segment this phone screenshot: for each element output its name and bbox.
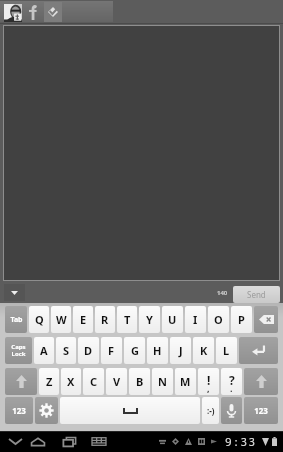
button[interactable]: I (185, 306, 206, 333)
button[interactable]: Q (29, 306, 49, 333)
staticText: X (67, 374, 75, 389)
button[interactable]: U (162, 306, 183, 333)
staticText: E (80, 312, 87, 327)
staticText: W (56, 312, 67, 327)
button[interactable]: Y (139, 306, 160, 333)
button[interactable]: Foursquare (44, 2, 62, 22)
button[interactable]: N (152, 368, 173, 395)
staticText: D (84, 343, 93, 358)
button[interactable]: More options (4, 284, 25, 301)
staticText: Send (247, 289, 266, 300)
button[interactable]: 123 (244, 397, 278, 424)
staticText: P (238, 312, 245, 327)
staticText: Tab (10, 315, 23, 325)
button[interactable]: K (193, 337, 214, 364)
button[interactable]: :-) (202, 397, 219, 424)
button[interactable]: D (78, 337, 99, 364)
button[interactable]: Tab (5, 306, 27, 333)
button[interactable]: Voice input (221, 397, 242, 424)
staticText: 123 (12, 405, 26, 416)
staticText: . (230, 382, 233, 394)
button[interactable]: Backspace (254, 306, 278, 333)
staticText: Y (146, 312, 153, 327)
staticText: B (136, 374, 144, 389)
button[interactable]: R (95, 306, 115, 333)
staticText: T (124, 312, 131, 327)
staticText: ? (229, 372, 235, 388)
button[interactable]: V (106, 368, 127, 395)
button[interactable]: Recent apps (57, 431, 81, 452)
button[interactable]: B (129, 368, 150, 395)
button[interactable]: H (147, 337, 168, 364)
staticText: U (168, 312, 177, 327)
button[interactable]: P (231, 306, 252, 333)
button[interactable]: Caps Lock (5, 337, 32, 364)
staticText: :-) (207, 405, 215, 416)
staticText: 140 (217, 289, 228, 297)
button[interactable]: 123 (5, 397, 33, 424)
button[interactable]: X (61, 368, 81, 395)
button[interactable]: ! (198, 368, 219, 395)
button[interactable]: Space (60, 397, 200, 424)
button[interactable]: S (56, 337, 76, 364)
button[interactable]: Keyboard (87, 431, 111, 452)
staticText: Z (46, 374, 53, 389)
staticText: 123 (254, 405, 268, 416)
staticText: R (101, 312, 109, 327)
button[interactable]: A (34, 337, 54, 364)
staticText: ! (207, 372, 211, 388)
staticText: Caps Lock (11, 343, 26, 358)
button[interactable]: M (175, 368, 196, 395)
staticText: S (63, 343, 70, 358)
button[interactable]: Enter (239, 337, 278, 364)
button[interactable]: F (101, 337, 122, 364)
button[interactable]: Send (233, 286, 280, 303)
staticText: O (214, 312, 223, 327)
button[interactable]: O (208, 306, 229, 333)
staticText: A (40, 343, 48, 358)
button[interactable]: L (216, 337, 237, 364)
button[interactable]: Home (26, 431, 50, 452)
staticText: N (158, 374, 167, 389)
button[interactable]: W (51, 306, 71, 333)
staticText: Q (35, 312, 44, 327)
button[interactable]: E (73, 306, 93, 333)
button[interactable]: Settings (35, 397, 58, 424)
staticText: 9:33 (225, 434, 257, 449)
staticText: , (207, 382, 210, 394)
staticText: K (200, 343, 208, 358)
staticText: C (90, 374, 98, 389)
button[interactable]: Twitter account (3, 3, 22, 22)
button[interactable]: G (124, 337, 145, 364)
button[interactable]: J (170, 337, 191, 364)
button[interactable]: ? (221, 368, 242, 395)
button[interactable]: Facebook (24, 2, 42, 23)
button[interactable]: Shift (244, 368, 278, 395)
staticText: M (180, 374, 191, 389)
staticText: H (153, 343, 162, 358)
staticText: I (193, 312, 198, 327)
staticText: J (179, 343, 183, 358)
button[interactable]: Hide keyboard (3, 431, 27, 452)
button[interactable]: T (117, 306, 137, 333)
staticText: V (113, 374, 121, 389)
button[interactable]: C (83, 368, 104, 395)
staticText: G (131, 343, 139, 358)
staticText: L (223, 343, 230, 358)
button[interactable]: Shift (5, 368, 37, 395)
staticText: F (108, 343, 115, 358)
button[interactable]: Z (39, 368, 59, 395)
